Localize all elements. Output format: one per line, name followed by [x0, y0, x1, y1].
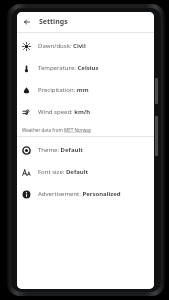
button[interactable]: Dawn dusk setting [17, 35, 154, 57]
staticText: Advertisement: Personalized [38, 190, 121, 198]
staticText: Wind speed: km/h [38, 108, 91, 116]
staticText: Temperature: Celsius [38, 64, 99, 72]
other: Theme setting [22, 146, 31, 155]
staticText: Theme: Default [38, 146, 83, 154]
staticText: Settings [39, 17, 68, 27]
button[interactable]: Back [21, 16, 33, 28]
staticText: Precipitation: mm [38, 86, 89, 94]
button[interactable]: Weather data from MET Norway [17, 123, 154, 136]
staticText: Dawn/dusk: Civil [38, 42, 86, 50]
button[interactable]: Advertisement setting [17, 183, 154, 205]
other: Temperature unit [22, 64, 31, 73]
staticText: Weather data from MET Norway [22, 127, 92, 133]
button[interactable]: Precipitation unit [17, 79, 154, 101]
button[interactable]: Font size setting [17, 161, 154, 183]
other: Wind speed unit [22, 108, 31, 117]
button[interactable]: Wind speed unit [17, 101, 154, 123]
staticText: Font size: Default [38, 168, 89, 176]
button[interactable]: Temperature unit [17, 57, 154, 79]
other: Advertisement setting [22, 190, 31, 199]
other: Precipitation unit [22, 86, 31, 95]
other: Dawn dusk setting [22, 42, 31, 51]
other: Font size setting [22, 168, 31, 177]
button[interactable]: Theme setting [17, 139, 154, 161]
